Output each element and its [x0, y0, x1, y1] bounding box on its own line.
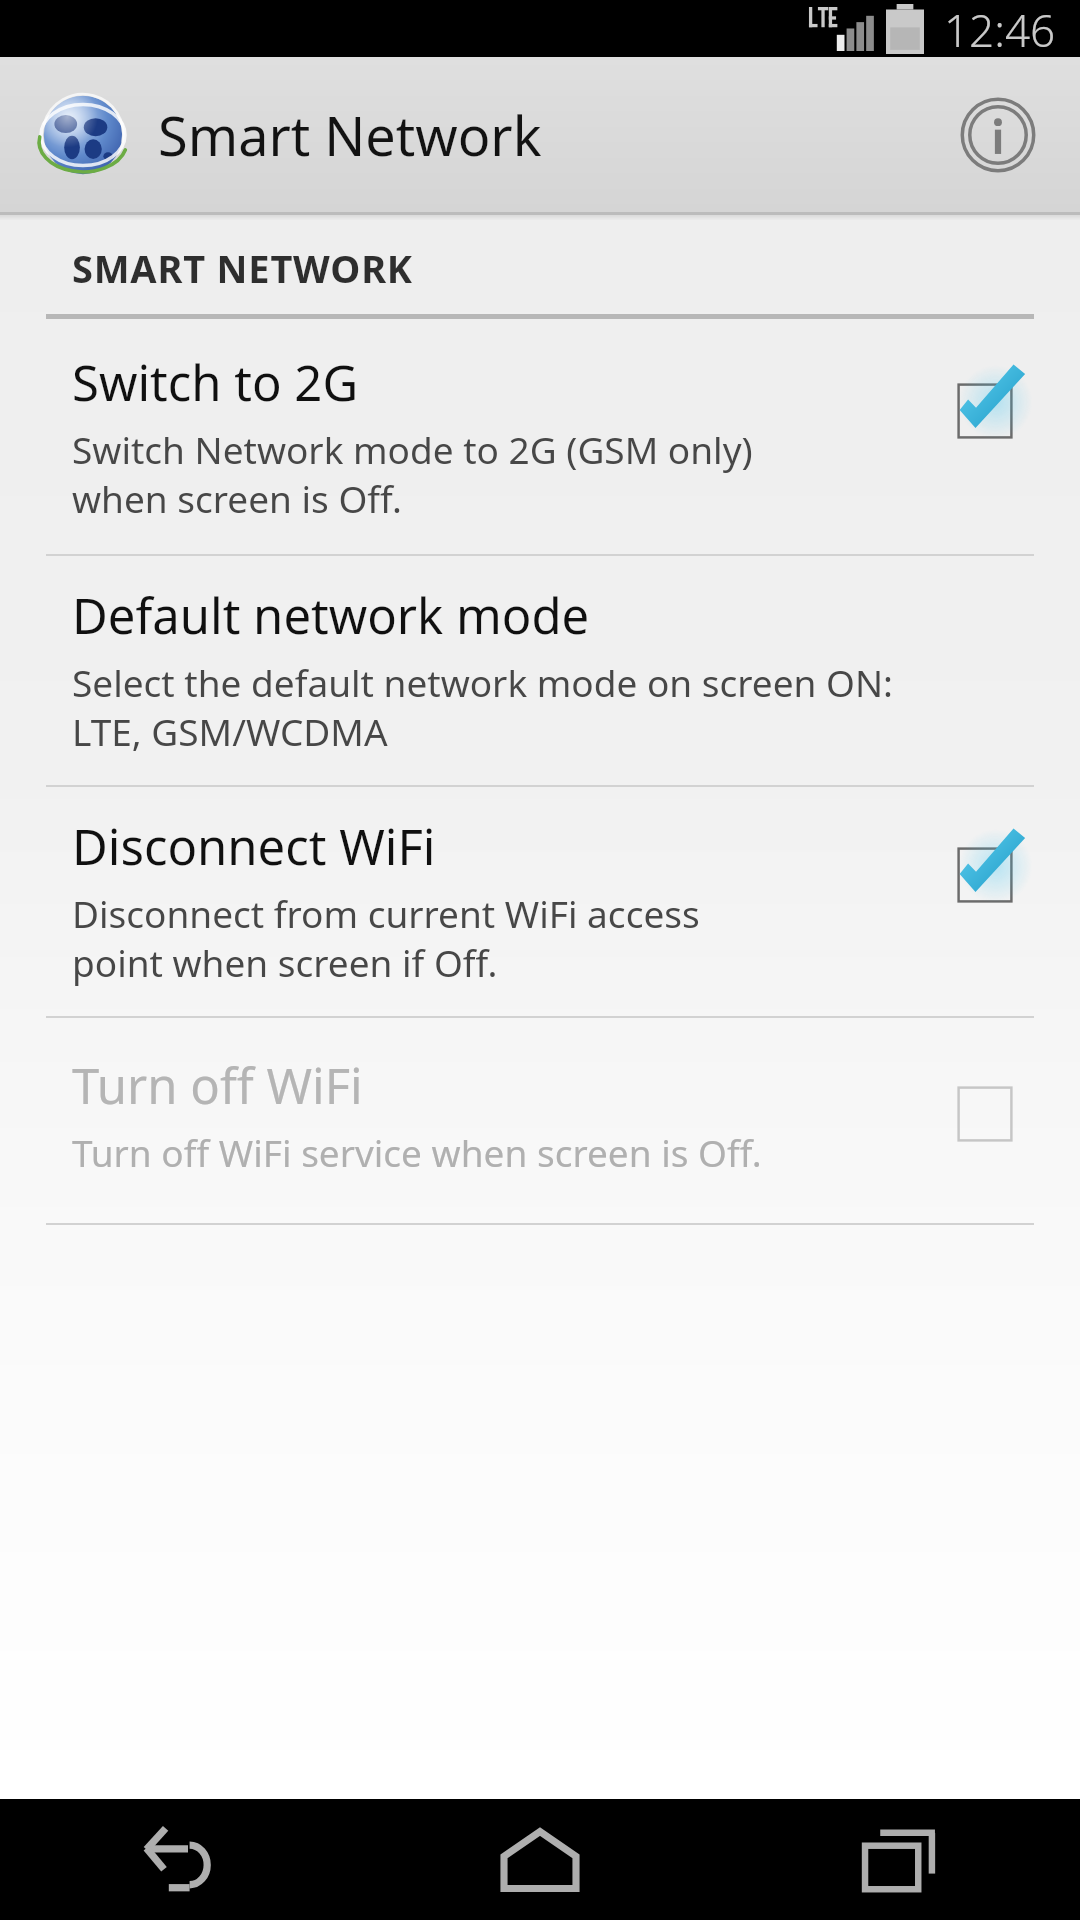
- button[interactable]: Checked: Disconnect WiFi: [941, 831, 1029, 919]
- staticText: Turn off WiFi: [72, 1052, 363, 1119]
- staticText: Disconnect WiFi: [72, 813, 436, 880]
- button[interactable]: Home: [360, 1799, 720, 1920]
- staticText: Switch to 2G: [72, 349, 359, 416]
- staticText: Turn off WiFi service when screen is Off…: [72, 1127, 762, 1177]
- button[interactable]: Checked: Switch to 2G: [941, 367, 1029, 455]
- staticText: Smart Network: [158, 98, 542, 172]
- staticText: Disconnect from current WiFi access poin…: [72, 888, 700, 988]
- button[interactable]: Disconnect WiFi: [0, 787, 1080, 1016]
- button[interactable]: Default network mode: [0, 556, 1080, 785]
- button[interactable]: Turn off WiFi: [0, 1018, 1080, 1223]
- button[interactable]: Back: [0, 1799, 360, 1920]
- staticText: Default network mode: [72, 582, 590, 649]
- button[interactable]: Unchecked: Turn off WiFi: [941, 1070, 1029, 1158]
- button[interactable]: Recent apps: [720, 1799, 1080, 1920]
- staticText: Select the default network mode on scree…: [72, 657, 894, 757]
- staticText: 12:46: [944, 0, 1056, 57]
- staticText: Switch Network mode to 2G (GSM only) whe…: [72, 424, 753, 524]
- staticText: SMART NETWORK: [72, 242, 413, 294]
- button[interactable]: Switch to 2G: [0, 319, 1080, 554]
- button[interactable]: Information: [942, 79, 1054, 191]
